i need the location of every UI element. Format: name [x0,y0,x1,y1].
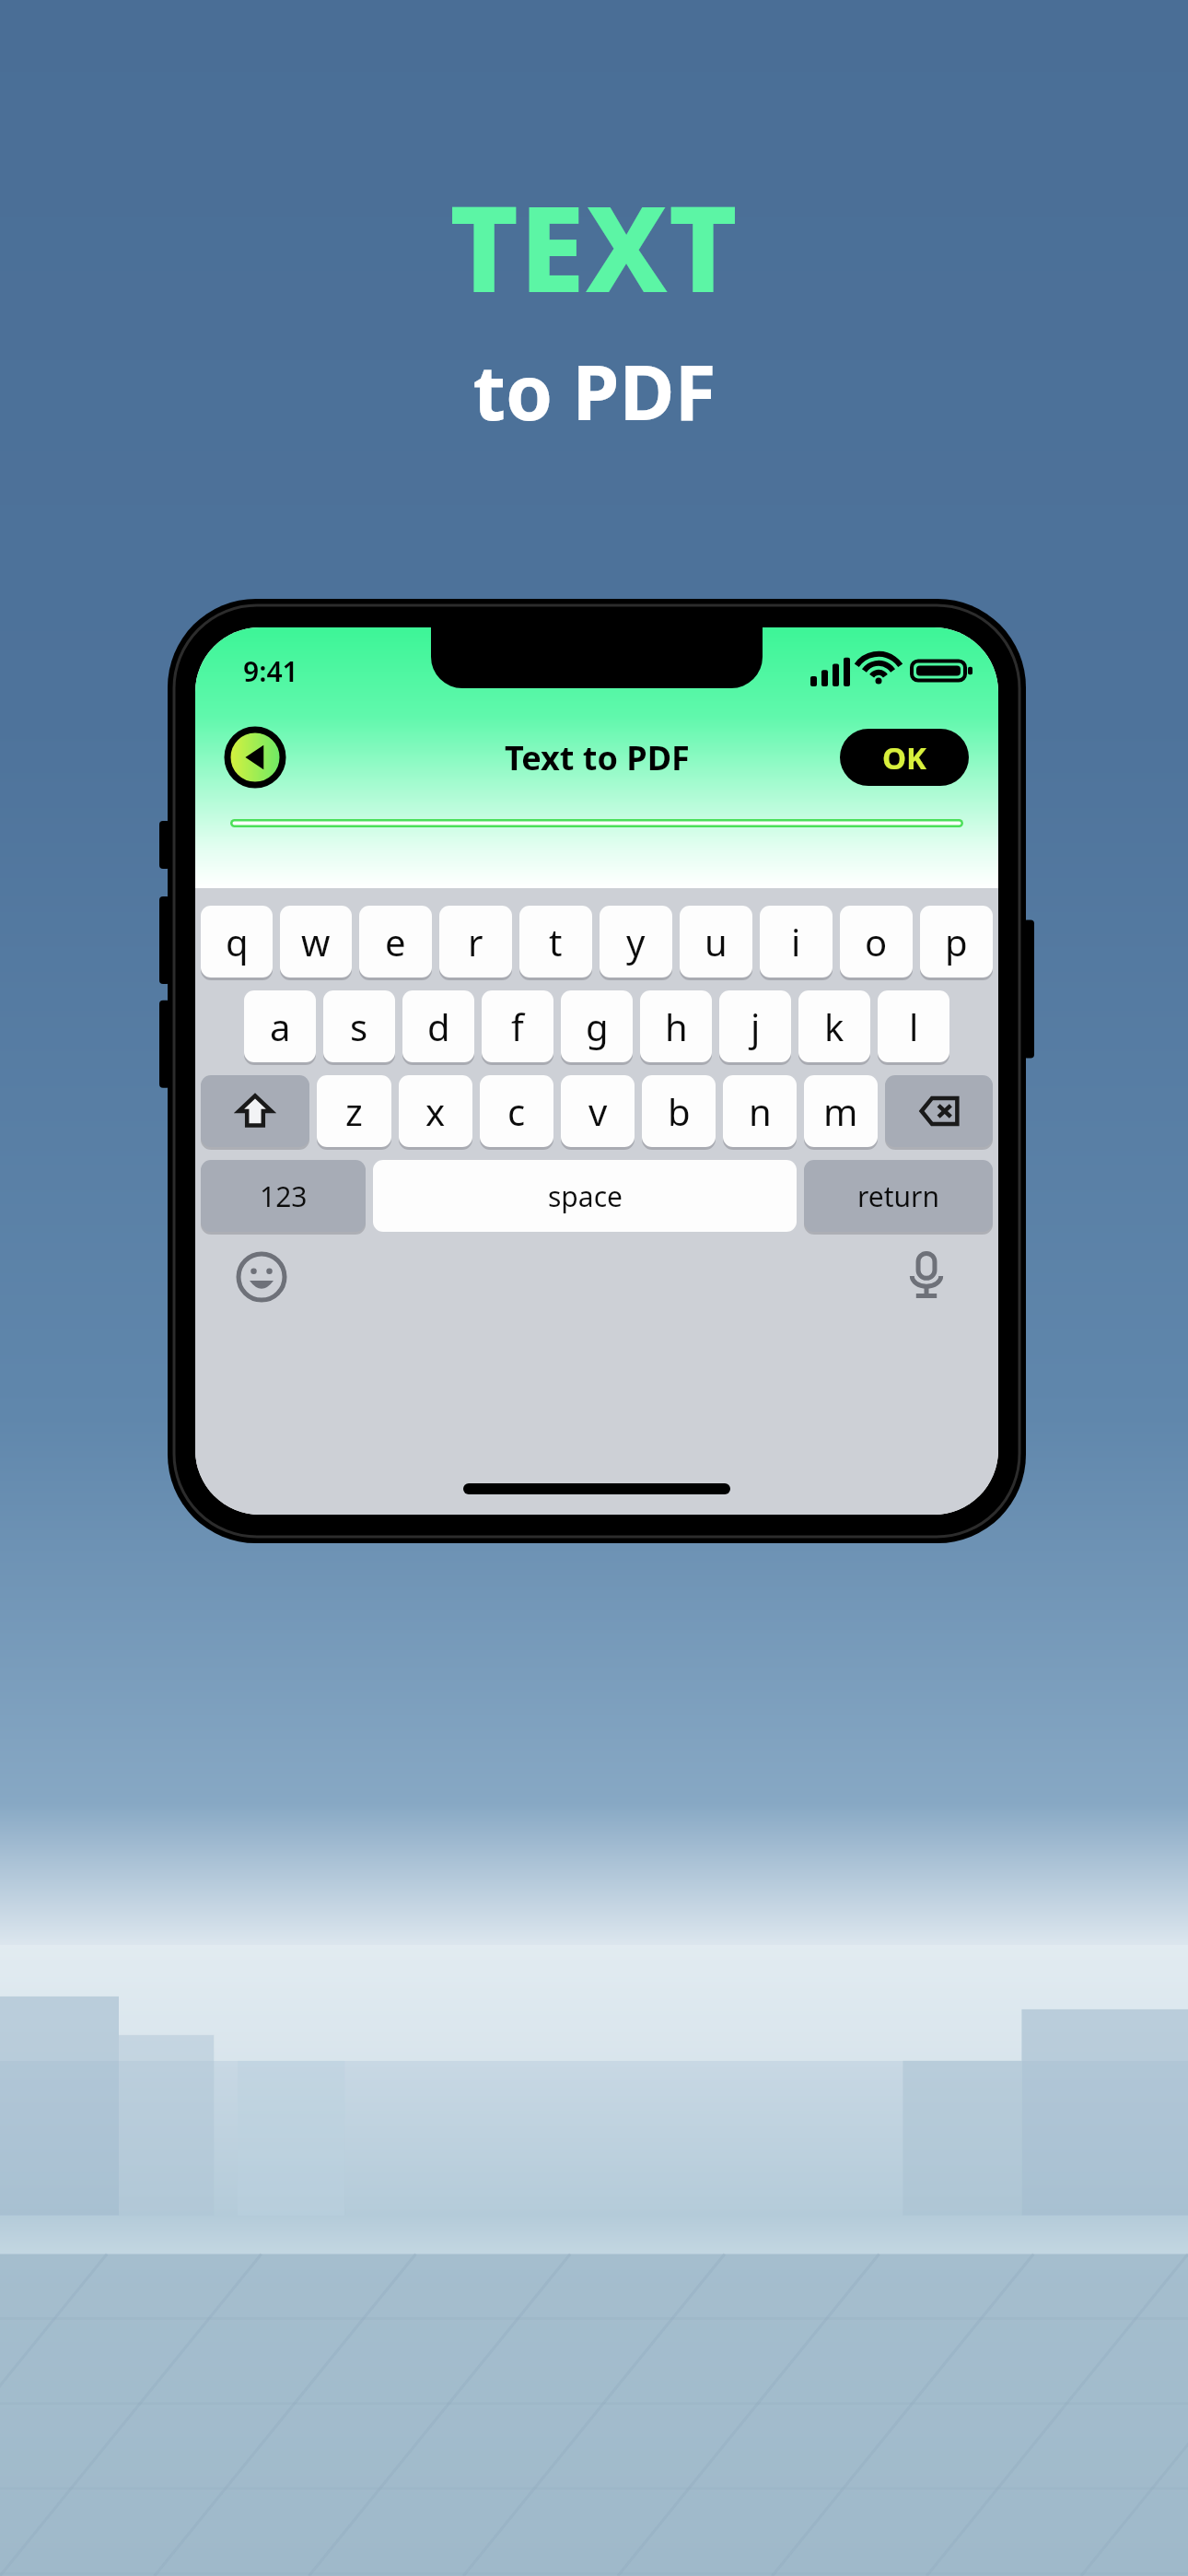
staticText: return [857,1177,940,1215]
button[interactable]: z [317,1075,391,1147]
staticText: r [468,917,483,966]
staticText: f [511,1001,524,1051]
button[interactable]: Delete [885,1075,993,1147]
button[interactable]: p [920,906,993,978]
button[interactable]: q [201,906,273,978]
button[interactable]: Back [225,727,285,788]
staticText: g [586,1001,609,1051]
staticText: h [665,1001,688,1051]
button[interactable]: n [723,1075,797,1147]
button[interactable]: Dictation [901,1249,952,1301]
button[interactable]: 123 [201,1160,366,1232]
button[interactable]: m [804,1075,878,1147]
staticText: a [270,1001,291,1051]
button[interactable]: Please enter [230,819,963,827]
staticText: e [385,917,406,966]
button[interactable]: o [840,906,913,978]
staticText: z [345,1086,363,1136]
button[interactable]: u [680,906,752,978]
button[interactable]: a [244,990,316,1062]
button[interactable]: i [760,906,833,978]
staticText: n [749,1086,772,1136]
button[interactable]: w [280,906,352,978]
staticText: t [549,917,563,966]
staticText: c [507,1086,526,1136]
button[interactable]: y [600,906,672,978]
button[interactable]: d [402,990,474,1062]
staticText: o [865,917,888,966]
button[interactable]: l [878,990,949,1062]
staticText: u [705,917,728,966]
staticText: i [791,917,801,966]
staticText: s [350,1001,368,1051]
staticText: Text to PDF [505,735,690,780]
staticText: x [425,1086,446,1136]
staticText: 9:41 [243,652,298,690]
button[interactable]: OK [840,729,969,786]
button[interactable]: v [561,1075,635,1147]
button[interactable]: Emoji [236,1251,287,1303]
staticText: m [823,1086,858,1136]
button[interactable]: return [804,1160,993,1232]
staticText: j [751,1001,761,1051]
button[interactable]: e [359,906,432,978]
button[interactable]: t [519,906,592,978]
button[interactable]: h [640,990,712,1062]
button[interactable]: x [399,1075,472,1147]
staticText: space [548,1177,623,1215]
staticText: k [824,1001,844,1051]
button[interactable]: space [373,1160,797,1232]
staticText: 123 [260,1177,308,1215]
button[interactable]: j [719,990,791,1062]
staticText: d [427,1001,450,1051]
button[interactable]: g [561,990,633,1062]
staticText: p [945,917,968,966]
staticText: v [588,1086,608,1136]
button[interactable]: k [798,990,870,1062]
staticText: OK [882,737,927,779]
button[interactable]: Shift [201,1075,309,1147]
button[interactable]: s [323,990,395,1062]
staticText: w [301,917,331,966]
staticText: to PDF [472,339,716,442]
staticText: b [668,1086,691,1136]
button[interactable]: c [480,1075,553,1147]
staticText: l [909,1001,919,1051]
button[interactable]: r [439,906,512,978]
staticText: TEXT [449,166,739,326]
staticText: y [626,917,646,966]
staticText: q [226,917,249,966]
button[interactable]: f [482,990,553,1062]
button[interactable]: b [642,1075,716,1147]
